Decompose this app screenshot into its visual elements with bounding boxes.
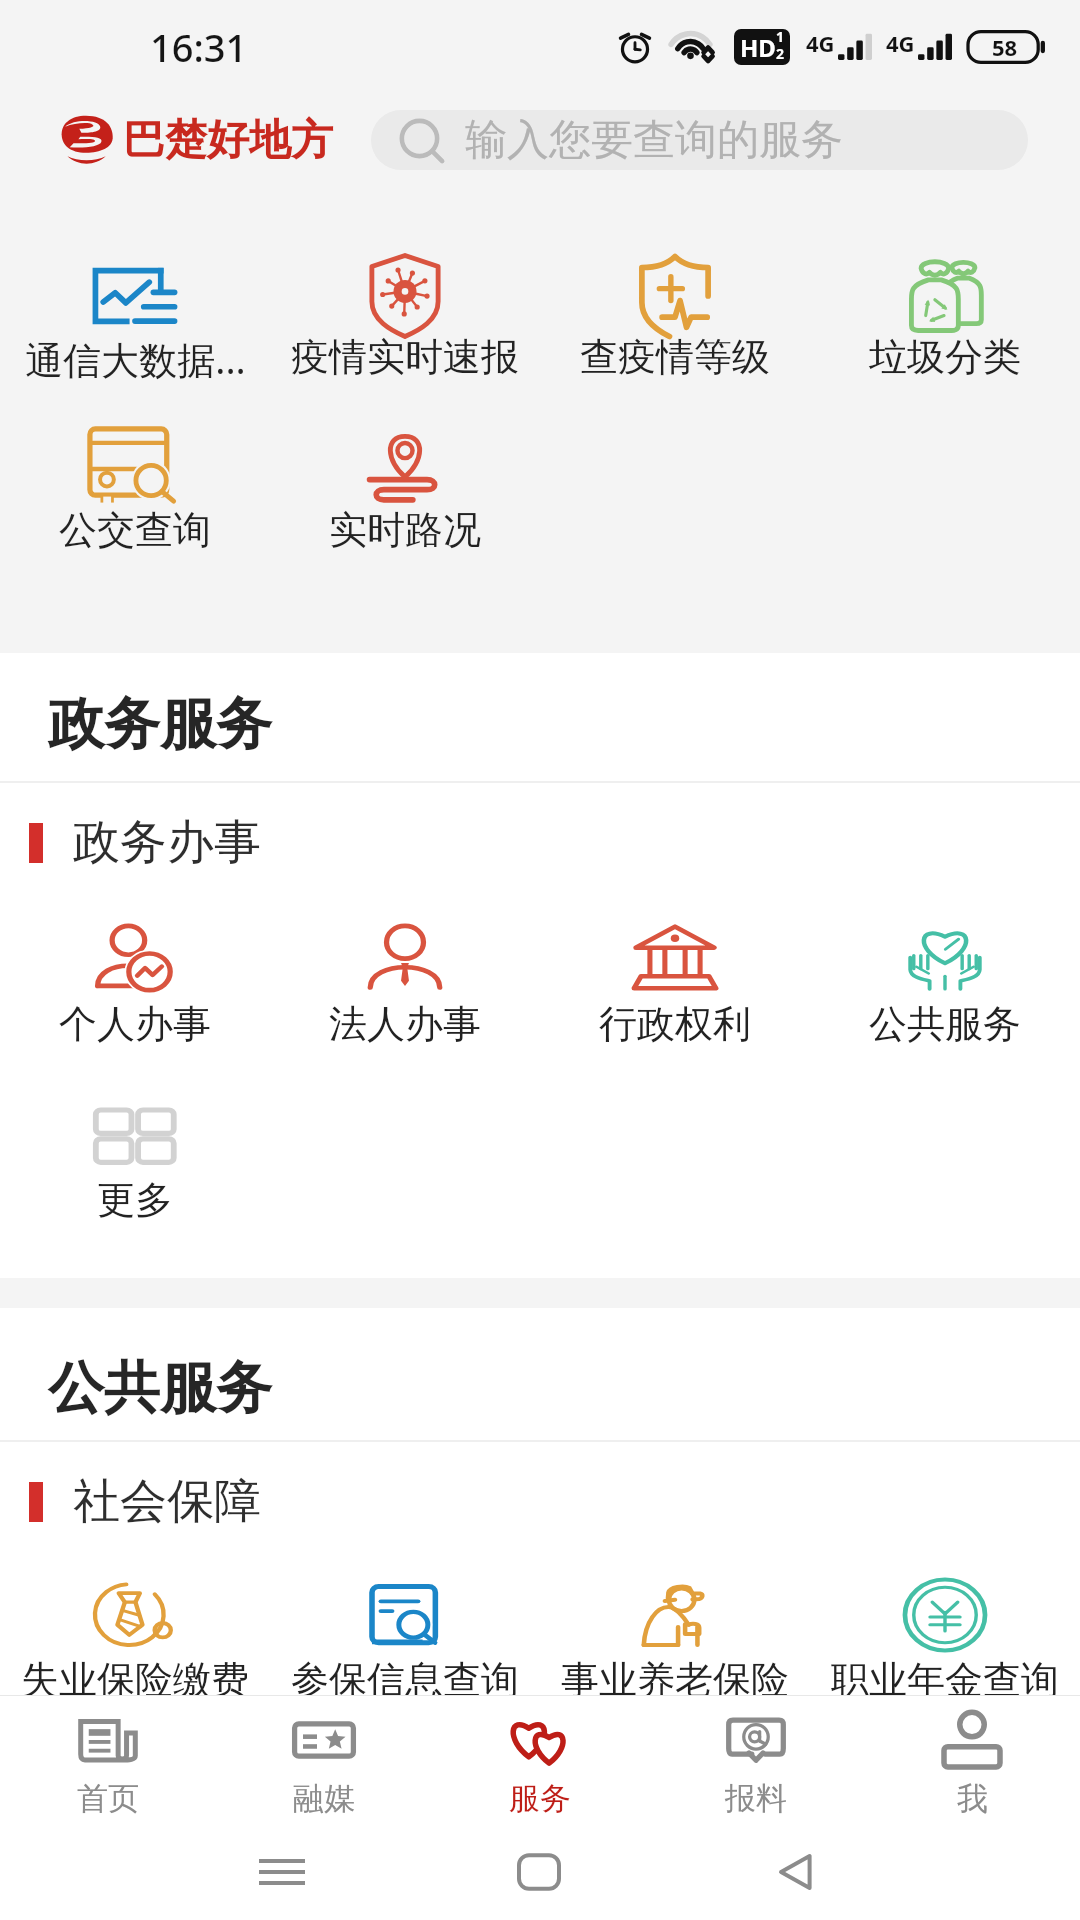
staticText: 职业年金查询 xyxy=(831,1656,1059,1704)
staticText: 4G xyxy=(806,28,835,58)
staticText: 政务服务 xyxy=(48,689,272,760)
button[interactable]: 输入您要查询的服务 xyxy=(371,110,1028,170)
staticText: 疫情实时速报 xyxy=(291,333,519,381)
button[interactable]: 我 xyxy=(864,1705,1080,1818)
button[interactable]: 通信大数据... xyxy=(0,250,270,390)
staticText: 服务 xyxy=(509,1779,571,1818)
staticText: 我 xyxy=(957,1779,988,1818)
button[interactable]: 报料 xyxy=(648,1705,864,1818)
staticText: 报料 xyxy=(725,1779,787,1818)
button[interactable]: 参保信息查询 xyxy=(270,1576,540,1721)
button[interactable]: 服务 xyxy=(432,1705,648,1818)
button[interactable]: 行政权利 xyxy=(540,920,810,1065)
staticText: 融媒 xyxy=(293,1779,355,1818)
staticText: 公共服务 xyxy=(869,1000,1021,1048)
button[interactable]: Recent apps xyxy=(237,1827,327,1917)
button[interactable]: Home xyxy=(494,1827,584,1917)
button[interactable]: 法人办事 xyxy=(270,920,540,1065)
staticText: 通信大数据... xyxy=(25,333,246,385)
staticText: 事业养老保险 xyxy=(561,1656,789,1704)
staticText: 2 xyxy=(776,44,785,61)
staticText: 16:31 xyxy=(150,21,248,73)
button[interactable]: 公共服务 xyxy=(810,920,1080,1065)
staticText: 行政权利 xyxy=(599,1000,751,1048)
staticText: 58 xyxy=(992,32,1018,62)
staticText: 政务办事 xyxy=(73,813,261,872)
staticText: 参保信息查询 xyxy=(291,1656,519,1704)
button[interactable]: 实时路况 xyxy=(270,423,540,563)
staticText: 公共服务 xyxy=(48,1353,272,1424)
button[interactable]: 事业养老保险 xyxy=(540,1576,810,1721)
staticText: 输入您要查询的服务 xyxy=(465,114,843,167)
staticText: 1 xyxy=(776,29,785,46)
staticText: 个人办事 xyxy=(59,1000,211,1048)
staticText: 法人办事 xyxy=(329,1000,481,1048)
button[interactable]: 融媒 xyxy=(216,1705,432,1818)
button[interactable]: 失业保险缴费 xyxy=(0,1576,270,1721)
staticText: 垃圾分类 xyxy=(869,333,1021,381)
button[interactable]: 个人办事 xyxy=(0,920,270,1065)
staticText: 公交查询 xyxy=(59,506,211,554)
button[interactable]: 更多 xyxy=(0,1096,270,1241)
staticText: 巴楚好地方 xyxy=(123,114,333,167)
button[interactable]: 垃圾分类 xyxy=(810,250,1080,390)
staticText: 社会保障 xyxy=(73,1472,261,1531)
button[interactable]: Back xyxy=(752,1827,842,1917)
button[interactable]: 职业年金查询 xyxy=(810,1576,1080,1721)
button[interactable]: 公交查询 xyxy=(0,423,270,563)
button[interactable]: 首页 xyxy=(0,1705,216,1818)
staticText: HD xyxy=(740,31,776,64)
button[interactable]: 查疫情等级 xyxy=(540,250,810,390)
staticText: 查疫情等级 xyxy=(580,333,770,381)
button[interactable]: 疫情实时速报 xyxy=(270,250,540,390)
staticText: 更多 xyxy=(97,1176,173,1224)
staticText: 实时路况 xyxy=(329,506,481,554)
staticText: 4G xyxy=(886,28,915,58)
staticText: 首页 xyxy=(77,1779,139,1818)
staticText: 失业保险缴费 xyxy=(21,1656,249,1704)
